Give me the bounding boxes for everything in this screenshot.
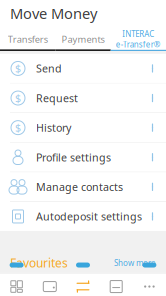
button[interactable]: Profile settings	[0, 143, 166, 172]
staticText: Autodeposit settings	[36, 209, 142, 224]
button[interactable]: $	[0, 113, 166, 143]
staticText: Move Money	[10, 3, 97, 23]
staticText: INTERAC	[122, 29, 154, 39]
button[interactable]: $	[0, 54, 166, 83]
button[interactable]: $	[0, 83, 166, 113]
staticText: Transfers	[8, 33, 48, 45]
staticText: Profile settings	[36, 150, 111, 164]
staticText: Manage contacts	[36, 180, 123, 194]
button[interactable]: INTERAC	[111, 29, 166, 51]
staticText: Favourites	[10, 255, 68, 271]
button[interactable]: Show more	[114, 258, 156, 268]
button[interactable]: Accounts	[0, 273, 33, 296]
button[interactable]: Autodeposit settings	[0, 202, 166, 231]
button[interactable]: Insights	[100, 273, 133, 296]
button[interactable]: Wallet	[33, 273, 66, 296]
staticText: History	[36, 121, 71, 135]
staticText: Payments	[61, 33, 104, 45]
staticText: $	[15, 121, 21, 135]
staticText: $	[15, 61, 21, 76]
button[interactable]: Manage contacts	[0, 172, 166, 202]
staticText: Show more	[114, 258, 156, 268]
staticText: Request	[36, 91, 78, 105]
staticText: Send	[36, 61, 62, 76]
staticText: $	[15, 91, 21, 105]
button[interactable]: More	[133, 273, 166, 296]
staticText: e-Transfer®	[116, 39, 161, 50]
button[interactable]: Transfers	[0, 29, 55, 51]
button[interactable]: Move Money	[66, 273, 100, 296]
button[interactable]: Payments	[55, 29, 111, 51]
